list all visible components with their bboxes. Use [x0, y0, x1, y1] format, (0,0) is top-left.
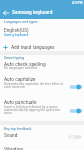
staticText: Smart typing	[4, 55, 25, 60]
button[interactable]: Auto punctuate	[0, 98, 84, 116]
staticText: Auto punctuate	[4, 99, 37, 105]
staticText: Qwerty keyboard	[4, 33, 29, 37]
staticText: Samsung keyboard	[12, 9, 53, 15]
button[interactable]: Auto capitalize	[0, 75, 84, 91]
staticText: Vibration	[4, 146, 24, 150]
staticText: Insert a full stop followed by a space a…	[4, 105, 66, 115]
staticText: No languages selected	[4, 66, 38, 70]
button[interactable]: Switch on	[69, 106, 83, 116]
button[interactable]: Add input languages	[0, 42, 84, 53]
staticText: Sound	[4, 132, 18, 138]
staticText: English(US)	[4, 27, 29, 33]
staticText: Automatically capitalize the first lette…	[4, 82, 66, 89]
button[interactable]: Switch off	[68, 132, 82, 142]
button[interactable]: Switch on	[69, 82, 83, 92]
staticText: Auto capitalize	[4, 76, 36, 82]
staticText: 4:15 PM	[72, 1, 83, 5]
button[interactable]: English(US)	[0, 26, 84, 39]
staticText: Auto check spelling	[4, 61, 46, 67]
button[interactable]: Back	[1, 8, 11, 18]
button[interactable]: Vibration	[0, 145, 84, 150]
staticText: Add input languages	[11, 44, 55, 50]
staticText: Key tap feedback	[4, 126, 32, 131]
button[interactable]: Sound	[0, 131, 84, 143]
staticText: Languages and types	[4, 19, 38, 24]
button[interactable]: Auto check spelling	[0, 60, 84, 71]
